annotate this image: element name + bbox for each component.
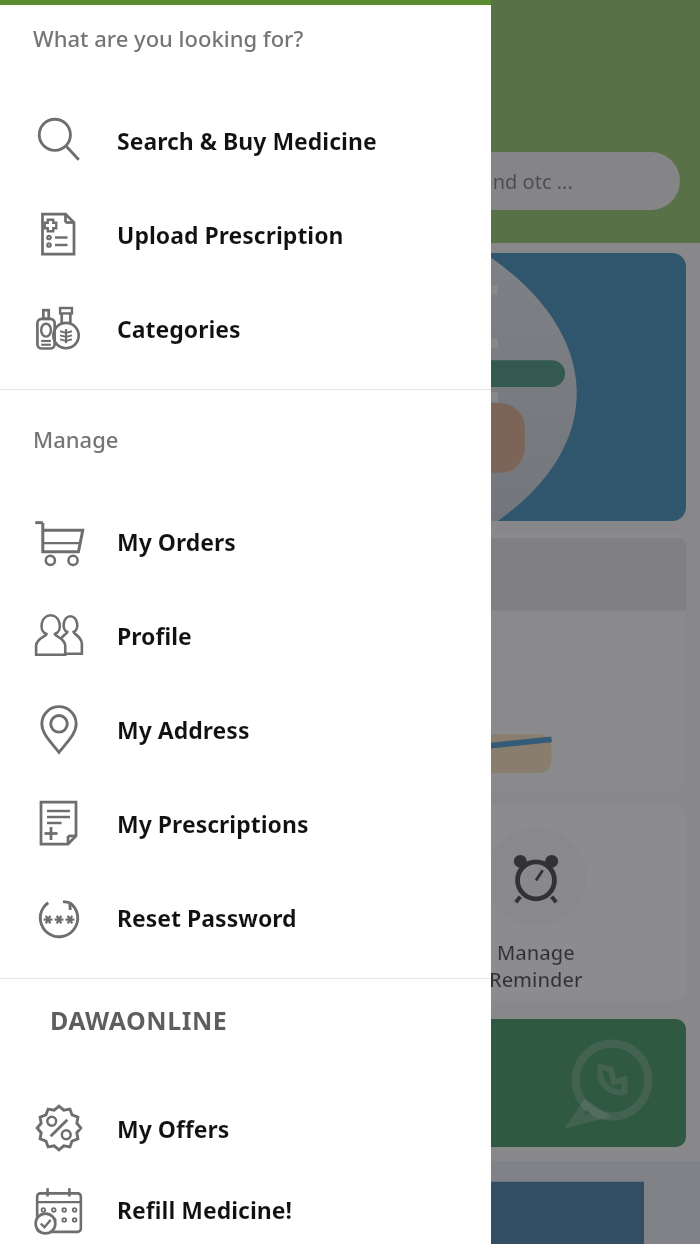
staticText: DAWAONLINE	[50, 1003, 228, 1037]
button[interactable]: My Prescriptions	[0, 776, 491, 870]
staticText: My Address	[117, 714, 250, 745]
button[interactable]: My Orders	[0, 494, 491, 588]
button[interactable]: Reset Password	[0, 870, 491, 964]
button[interactable]: Search & Buy Medicine	[0, 93, 491, 187]
staticText: Reset Password	[117, 902, 297, 933]
staticText: Manage	[497, 939, 575, 966]
staticText: My Offers	[117, 1113, 230, 1144]
staticText: Upload Prescription	[117, 219, 344, 250]
staticText: Search & Buy Medicine	[117, 125, 377, 156]
staticText: My Prescriptions	[117, 808, 309, 839]
staticText: Reminder	[489, 966, 583, 993]
staticText: Search medicine and otc ...	[322, 168, 573, 195]
button[interactable]: Profile	[0, 588, 491, 682]
staticText: Manage	[33, 424, 119, 454]
staticText: My Orders	[117, 526, 236, 557]
button[interactable]: Upload Prescription	[0, 187, 491, 281]
button[interactable]: Search medicine and otc ...	[300, 152, 680, 210]
button[interactable]: Refill Medicine!	[0, 1175, 491, 1244]
staticText: What are you looking for?	[33, 23, 304, 53]
button[interactable]: Order on WhatsApp	[14, 1019, 686, 1147]
button[interactable]: My Address	[0, 682, 491, 776]
staticText: Profile	[117, 620, 192, 651]
staticText: Refill Medicine!	[117, 1194, 293, 1225]
button[interactable]: Manage	[386, 805, 686, 1001]
button[interactable]: My Offers	[0, 1081, 491, 1175]
staticText: Categories	[117, 313, 241, 344]
button[interactable]: Categories	[0, 281, 491, 375]
